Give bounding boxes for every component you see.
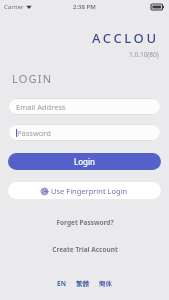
staticText: Use Fingerprint Login	[51, 186, 128, 196]
staticText: ACCLOU	[92, 29, 159, 47]
button[interactable]: EN	[55, 278, 68, 289]
staticText: Carrier	[4, 3, 24, 11]
button[interactable]: Forget Password?	[51, 216, 119, 229]
staticText: 2:38 PM	[73, 3, 96, 11]
button[interactable]: Login	[8, 153, 161, 170]
staticText: EN	[57, 279, 66, 288]
staticText: Password	[17, 128, 51, 138]
staticText: Forget Password?	[56, 218, 114, 227]
staticText: 繁體	[76, 280, 89, 288]
staticText: 簡体	[99, 280, 112, 288]
button[interactable]: 繁體	[74, 279, 91, 289]
other: Use Fingerprint Login	[41, 188, 48, 195]
button[interactable]: Password	[8, 124, 161, 141]
staticText: Email Address	[16, 102, 66, 112]
staticText: Create Trial Account	[52, 245, 118, 254]
button[interactable]: Create Trial Account	[47, 243, 123, 256]
staticText: 1.0.10(80)	[129, 50, 159, 59]
staticText: LOGIN	[12, 71, 53, 86]
button[interactable]: 簡体	[97, 279, 114, 289]
button[interactable]: Email Address	[8, 98, 161, 115]
button[interactable]: Use Fingerprint Login	[8, 182, 161, 199]
staticText: Login	[74, 156, 95, 167]
